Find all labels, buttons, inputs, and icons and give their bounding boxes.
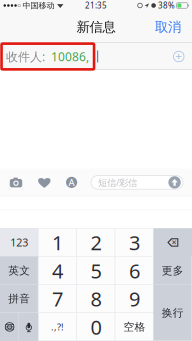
staticText: 8 — [90, 285, 101, 312]
staticText: .,?! — [51, 321, 64, 333]
button[interactable]: 换行 — [154, 285, 192, 341]
staticText: 换行 — [162, 306, 184, 319]
button[interactable]: 英文 — [0, 257, 38, 285]
button[interactable]: 空格 — [115, 313, 154, 341]
staticText: 1 — [52, 229, 63, 256]
staticText: 拼音 — [8, 292, 30, 305]
button[interactable]: 6 — [115, 257, 154, 285]
button[interactable]: Switch keyboard — [0, 313, 19, 341]
button[interactable]: Add contact — [165, 44, 192, 69]
button[interactable]: Camera — [5, 170, 27, 194]
staticText: 4 — [52, 257, 63, 284]
button[interactable]: Digital Touch — [33, 170, 55, 195]
staticText: 6 — [129, 257, 140, 284]
button[interactable]: 3 — [115, 228, 154, 256]
button[interactable]: 0 — [77, 313, 115, 341]
staticText: 空格 — [123, 320, 145, 333]
staticText: 5 — [90, 257, 101, 284]
staticText: ✕ — [171, 239, 177, 246]
button[interactable]: 123 — [0, 228, 38, 256]
staticText: 38% — [158, 0, 175, 11]
button[interactable]: .,?! — [38, 313, 77, 341]
staticText: 短信/彩信 — [98, 176, 137, 189]
button[interactable]: Send — [168, 176, 181, 189]
button[interactable]: 2 — [77, 228, 115, 256]
staticText: 10086, — [51, 48, 89, 64]
staticText: 3 — [129, 229, 140, 256]
button[interactable]: 7 — [38, 285, 77, 313]
staticText: 取消 — [155, 19, 181, 35]
button[interactable]: Dictate — [19, 313, 38, 341]
button[interactable]: 9 — [115, 285, 154, 313]
staticText: 123 — [10, 235, 28, 250]
staticText: 更多 — [162, 264, 184, 277]
staticText: A — [69, 176, 75, 189]
button[interactable]: 5 — [77, 257, 115, 285]
button[interactable]: 4 — [38, 257, 77, 285]
staticText: 新信息 — [76, 19, 115, 35]
staticText: 21:35 — [85, 0, 107, 11]
staticText: 7 — [52, 285, 63, 312]
button[interactable]: Apps — [61, 170, 83, 195]
staticText: 中国移动 — [23, 1, 55, 10]
staticText: 9 — [129, 285, 140, 312]
button[interactable]: 1 — [38, 228, 77, 256]
button[interactable]: 取消 — [149, 12, 187, 42]
button[interactable]: 更多 — [154, 257, 192, 285]
staticText: 英文 — [8, 264, 30, 277]
button[interactable]: Delete — [154, 228, 192, 256]
staticText: 0 — [90, 314, 101, 340]
button[interactable]: 拼音 — [0, 285, 38, 313]
button[interactable]: 8 — [77, 285, 115, 313]
staticText: 2 — [90, 229, 101, 256]
staticText: 收件人: — [6, 48, 45, 64]
